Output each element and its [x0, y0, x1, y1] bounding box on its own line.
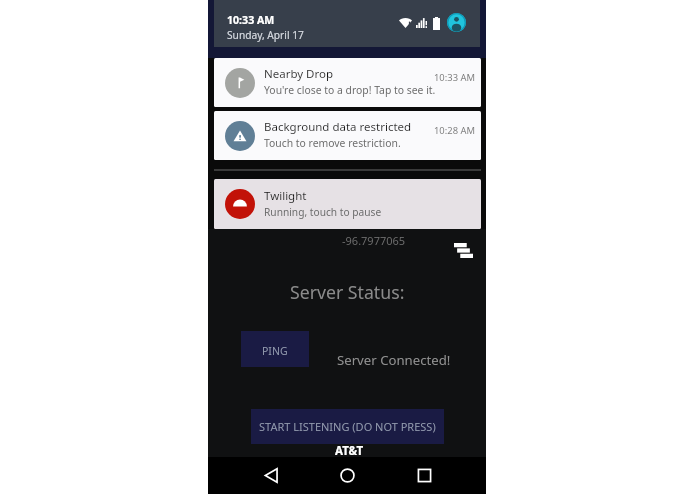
button[interactable]: START LISTENING (DO NOT PRESS) [251, 409, 444, 444]
staticText: Background data restricted [264, 119, 412, 135]
staticText: Sunday, April 17 [227, 28, 304, 42]
staticText: AT&T [335, 443, 364, 459]
button[interactable]: Background data restricted [214, 111, 481, 160]
button[interactable]: Sort order [451, 238, 476, 263]
button[interactable]: PING [241, 331, 309, 367]
button[interactable]: Recents [411, 457, 437, 494]
button[interactable]: Back [258, 457, 284, 494]
button[interactable]: Twilight [214, 179, 481, 229]
staticText: Twilight [264, 188, 307, 204]
staticText: START LISTENING (DO NOT PRESS) [259, 419, 436, 434]
button[interactable]: Nearby Drop [214, 58, 481, 107]
staticText: -96.7977065 [342, 233, 406, 248]
staticText: Server Status: [290, 280, 405, 304]
staticText: 10:33 AM [227, 13, 275, 27]
button[interactable]: Home [334, 457, 360, 494]
staticText: Running, touch to pause [264, 205, 382, 219]
staticText: PING [262, 344, 288, 358]
staticText: Touch to remove restriction. [264, 136, 401, 150]
staticText: 10:28 AM [434, 124, 475, 137]
staticText: Server Connected! [337, 351, 451, 369]
button[interactable]: Account [447, 13, 466, 32]
staticText: Nearby Drop [264, 66, 334, 82]
staticText: You're close to a drop! Tap to see it. [264, 83, 436, 97]
staticText: 10:33 AM [434, 71, 475, 84]
